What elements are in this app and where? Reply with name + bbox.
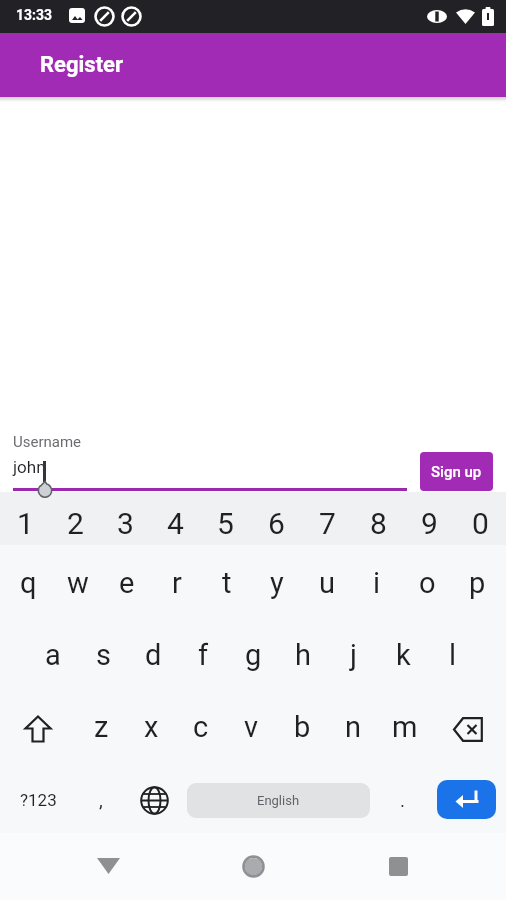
staticText: y — [270, 566, 284, 600]
button[interactable]: 8 — [353, 492, 404, 545]
button[interactable]: j — [328, 617, 378, 689]
staticText: t — [222, 566, 232, 600]
staticText: 0 — [472, 506, 489, 541]
button[interactable]: w — [53, 545, 102, 617]
button[interactable]: g — [228, 617, 278, 689]
staticText: d — [145, 638, 162, 672]
staticText: h — [295, 638, 311, 672]
button[interactable] — [437, 780, 496, 819]
staticText: e — [119, 566, 135, 600]
button[interactable]: 7 — [302, 492, 353, 545]
button[interactable]: i — [352, 545, 402, 617]
staticText: Username — [13, 433, 82, 451]
staticText: w — [67, 566, 89, 600]
staticText: 9 — [421, 506, 438, 541]
staticText: a — [45, 638, 61, 672]
button[interactable]: ?123 — [0, 761, 76, 833]
button[interactable]: English — [187, 783, 370, 818]
button[interactable]: s — [78, 617, 128, 689]
staticText: ?123 — [20, 790, 57, 810]
button[interactable]: c — [176, 689, 226, 761]
staticText: z — [94, 710, 109, 744]
staticText: p — [469, 566, 486, 600]
staticText: Register — [40, 52, 124, 78]
staticText: x — [144, 710, 159, 744]
staticText: , — [99, 789, 103, 811]
button[interactable]: 3 — [100, 492, 150, 545]
button[interactable]: o — [402, 545, 452, 617]
staticText: q — [20, 566, 37, 600]
staticText: 5 — [217, 506, 234, 541]
staticText: Sign up — [431, 463, 482, 481]
button[interactable]: v — [226, 689, 277, 761]
button[interactable]: n — [328, 689, 379, 761]
button[interactable]: 2 — [50, 492, 100, 545]
button[interactable] — [213, 833, 293, 900]
button[interactable] — [358, 833, 438, 900]
button[interactable]: f — [178, 617, 228, 689]
staticText: j — [350, 638, 357, 672]
button[interactable]: q — [4, 545, 53, 617]
staticText: English — [257, 793, 300, 808]
button[interactable]: , — [76, 761, 126, 833]
button[interactable]: x — [126, 689, 176, 761]
staticText: u — [319, 566, 335, 600]
staticText: s — [96, 638, 111, 672]
button[interactable]: r — [152, 545, 202, 617]
button[interactable]: p — [452, 545, 502, 617]
button[interactable]: 1 — [0, 492, 50, 545]
staticText: 2 — [67, 506, 84, 541]
button[interactable]: 4 — [150, 492, 200, 545]
staticText: 4 — [167, 506, 184, 541]
staticText: m — [392, 710, 418, 744]
button[interactable]: Sign up — [420, 452, 493, 491]
button[interactable]: b — [277, 689, 328, 761]
button[interactable]: d — [128, 617, 178, 689]
button[interactable] — [0, 689, 76, 761]
staticText: b — [294, 710, 311, 744]
button[interactable] — [68, 833, 148, 900]
button[interactable] — [430, 689, 506, 761]
staticText: . — [400, 789, 406, 811]
button[interactable]: k — [378, 617, 428, 689]
button[interactable]: e — [102, 545, 152, 617]
staticText: i — [373, 566, 381, 600]
staticText: o — [419, 566, 436, 600]
button[interactable]: l — [428, 617, 478, 689]
staticText: n — [345, 710, 362, 744]
staticText: l — [449, 638, 457, 672]
button[interactable]: 6 — [251, 492, 302, 545]
button[interactable]: z — [76, 689, 126, 761]
staticText: john — [13, 457, 46, 477]
staticText: k — [396, 638, 411, 672]
staticText: g — [245, 638, 262, 672]
staticText: 13:33 — [16, 7, 53, 23]
button[interactable]: . — [378, 761, 428, 833]
button[interactable]: 0 — [455, 492, 506, 545]
staticText: 8 — [370, 506, 387, 541]
button[interactable]: y — [252, 545, 302, 617]
staticText: 6 — [268, 506, 285, 541]
staticText: v — [244, 710, 259, 744]
button[interactable]: h — [278, 617, 328, 689]
button[interactable]: 5 — [200, 492, 251, 545]
button[interactable]: t — [202, 545, 252, 617]
button[interactable]: m — [379, 689, 430, 761]
staticText: 3 — [117, 506, 134, 541]
staticText: 7 — [319, 506, 336, 541]
button[interactable] — [129, 761, 179, 833]
staticText: c — [193, 710, 209, 744]
staticText: r — [172, 566, 182, 600]
staticText: 1 — [17, 506, 34, 541]
button[interactable]: a — [28, 617, 78, 689]
button[interactable]: 9 — [404, 492, 455, 545]
staticText: f — [198, 638, 209, 672]
button[interactable]: u — [302, 545, 352, 617]
